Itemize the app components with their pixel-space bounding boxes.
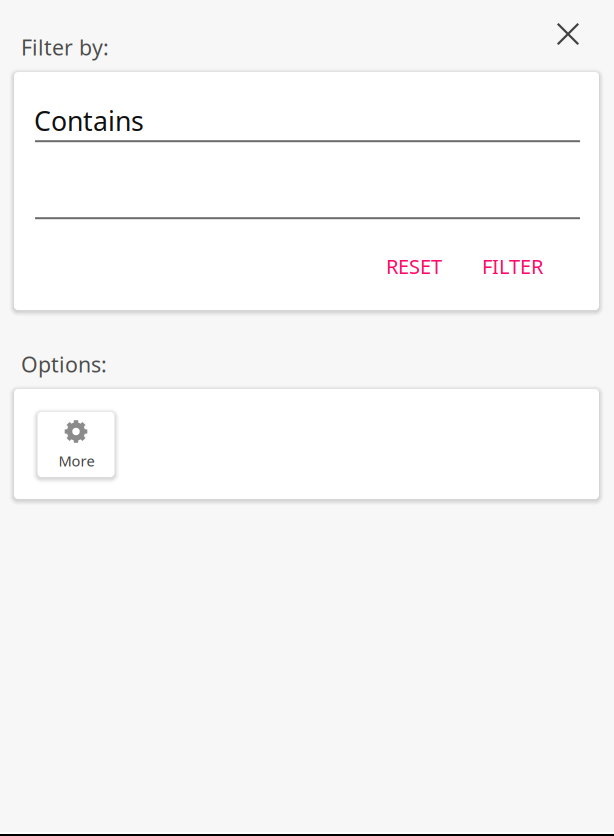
staticText: Filter by: xyxy=(21,33,109,61)
staticText: Options: xyxy=(21,350,107,378)
staticText: RESET xyxy=(386,253,442,280)
button[interactable]: RESET xyxy=(374,244,454,289)
staticText: More xyxy=(58,451,94,470)
button[interactable]: More xyxy=(37,412,114,477)
button[interactable]: Close xyxy=(544,10,592,58)
staticText: FILTER xyxy=(482,253,543,280)
staticText: Contains xyxy=(34,103,144,138)
button[interactable]: FILTER xyxy=(470,244,555,289)
